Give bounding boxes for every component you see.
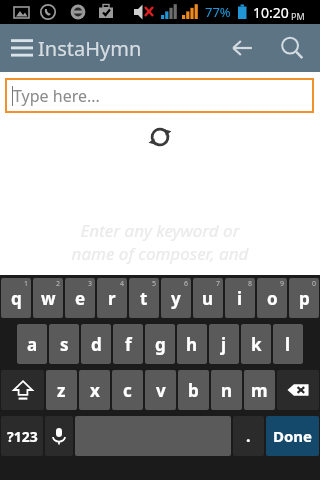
staticText: 8 <box>248 279 253 289</box>
staticText: 9 <box>280 279 285 289</box>
button[interactable]: n <box>211 370 242 410</box>
button[interactable]: Back <box>222 28 262 68</box>
staticText: 4 <box>120 279 125 289</box>
staticText: a <box>27 333 38 356</box>
button[interactable]: d <box>81 324 111 364</box>
button[interactable]: l <box>273 324 303 364</box>
button[interactable]: p <box>289 278 319 318</box>
button[interactable]: Refresh <box>141 118 179 156</box>
staticText: i <box>237 287 243 310</box>
staticText: k <box>251 333 262 356</box>
staticText: d <box>91 333 102 356</box>
staticText: ?123 <box>7 427 38 446</box>
staticText: u <box>202 287 214 310</box>
button[interactable]: Search <box>272 28 312 68</box>
staticText: e <box>75 287 86 310</box>
button[interactable]: t <box>129 278 159 318</box>
button[interactable]: j <box>209 324 239 364</box>
staticText: Enter any keyword or name of composer, a… <box>24 219 296 265</box>
button[interactable]: r <box>97 278 127 318</box>
button[interactable]: ?123 <box>1 416 43 456</box>
button[interactable]: f <box>113 324 143 364</box>
button[interactable]: s <box>49 324 79 364</box>
staticText: w <box>41 287 56 310</box>
staticText: InstaHymn <box>38 35 142 62</box>
button[interactable]: o <box>257 278 287 318</box>
button[interactable]: m <box>244 370 275 410</box>
staticText: 0 <box>312 279 317 289</box>
staticText: 10:20 <box>253 3 289 22</box>
button[interactable]: h <box>177 324 207 364</box>
button[interactable]: a <box>17 324 47 364</box>
staticText: g <box>155 333 166 356</box>
staticText: c <box>123 379 132 402</box>
button[interactable]: k <box>241 324 271 364</box>
staticText: . <box>246 425 251 447</box>
staticText: 3 <box>88 279 93 289</box>
staticText: PM <box>291 10 305 22</box>
staticText: o <box>267 287 278 310</box>
staticText: t <box>140 287 148 310</box>
staticText: 7 <box>216 279 221 289</box>
staticText: b <box>188 379 199 402</box>
staticText: 2 <box>56 279 61 289</box>
button[interactable]: Shift <box>1 370 44 410</box>
button[interactable]: z <box>46 370 77 410</box>
button[interactable]: q <box>1 278 31 318</box>
staticText: 5 <box>152 279 157 289</box>
button[interactable]: w <box>33 278 63 318</box>
button[interactable]: i <box>225 278 255 318</box>
button[interactable]: Backspace <box>277 370 319 410</box>
staticText: l <box>285 333 291 356</box>
staticText: r <box>108 287 116 310</box>
staticText: 6 <box>184 279 189 289</box>
staticText: 1 <box>24 279 29 289</box>
staticText: z <box>57 379 66 402</box>
button[interactable]: Done <box>266 416 319 456</box>
button[interactable]: . <box>233 416 264 456</box>
staticText: x <box>90 379 100 402</box>
staticText: s <box>60 333 69 356</box>
button[interactable]: y <box>161 278 191 318</box>
staticText: n <box>221 379 233 402</box>
staticText: 77% <box>205 3 231 21</box>
button[interactable]: Voice input <box>45 416 73 456</box>
staticText: f <box>125 333 132 356</box>
staticText: Type here... <box>13 85 100 107</box>
staticText: y <box>171 287 181 310</box>
staticText: m <box>251 379 268 402</box>
staticText: h <box>186 333 198 356</box>
staticText: p <box>299 287 310 310</box>
button[interactable]: u <box>193 278 223 318</box>
button[interactable]: b <box>178 370 209 410</box>
staticText: q <box>11 287 22 310</box>
staticText: Done <box>273 426 313 446</box>
staticText: j <box>221 333 227 356</box>
button[interactable]: Type here... <box>7 80 312 111</box>
button[interactable]: c <box>112 370 143 410</box>
staticText: v <box>156 379 166 402</box>
button[interactable]: v <box>145 370 176 410</box>
button[interactable]: e <box>65 278 95 318</box>
button[interactable]: g <box>145 324 175 364</box>
button[interactable]: Open navigation menu <box>4 30 40 66</box>
button[interactable]: x <box>79 370 110 410</box>
